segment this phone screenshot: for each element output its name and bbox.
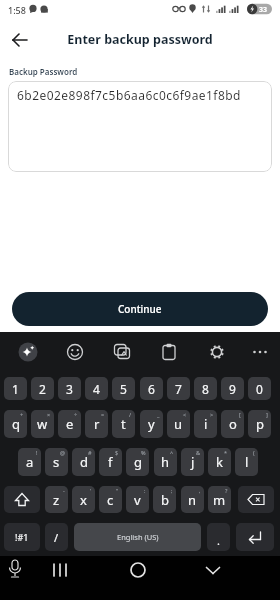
staticText: - bbox=[63, 487, 65, 494]
staticText: Backup Password bbox=[9, 66, 78, 77]
staticText: _ bbox=[157, 411, 160, 418]
button[interactable]: q bbox=[4, 410, 27, 438]
staticText: v bbox=[134, 491, 141, 509]
staticText: 8 bbox=[202, 381, 209, 397]
staticText: 1 bbox=[12, 381, 19, 397]
button[interactable] bbox=[204, 339, 230, 365]
staticText: f bbox=[108, 453, 113, 471]
staticText: $ bbox=[115, 449, 119, 456]
button[interactable]: 1 bbox=[4, 377, 27, 400]
staticText: [ bbox=[239, 411, 241, 418]
staticText: j bbox=[191, 453, 195, 471]
button[interactable]: 9 bbox=[221, 377, 244, 400]
button[interactable]: r bbox=[85, 410, 108, 438]
staticText: 6 bbox=[148, 381, 155, 397]
button[interactable]: English (US) bbox=[74, 523, 201, 551]
button[interactable]: p bbox=[248, 410, 271, 438]
button[interactable]: n bbox=[181, 486, 204, 513]
staticText: o bbox=[229, 415, 237, 433]
button[interactable]: y bbox=[140, 410, 163, 438]
button[interactable]: c bbox=[99, 486, 122, 513]
button[interactable] bbox=[238, 486, 274, 513]
staticText: < bbox=[183, 411, 187, 418]
staticText: a bbox=[26, 453, 34, 471]
staticText: , bbox=[199, 487, 201, 494]
button[interactable]: h bbox=[154, 448, 177, 476]
button[interactable]: k bbox=[208, 448, 231, 476]
button[interactable]: s bbox=[45, 448, 68, 476]
button[interactable]: !#1 bbox=[4, 523, 40, 551]
button[interactable]: j bbox=[181, 448, 204, 476]
button[interactable]: g bbox=[126, 448, 149, 476]
button[interactable]: 6 bbox=[140, 377, 163, 400]
staticText: 1:58 bbox=[8, 4, 26, 16]
button[interactable] bbox=[126, 558, 150, 582]
button[interactable] bbox=[247, 339, 273, 365]
button[interactable]: 0 bbox=[248, 377, 271, 400]
staticText: * bbox=[224, 449, 228, 456]
staticText: n bbox=[188, 491, 197, 509]
button[interactable] bbox=[5, 558, 25, 582]
staticText: k bbox=[216, 453, 223, 471]
staticText: ; bbox=[171, 487, 173, 494]
staticText: u bbox=[174, 415, 183, 433]
staticText: : bbox=[144, 487, 146, 494]
staticText: " bbox=[116, 487, 119, 494]
button[interactable] bbox=[8, 28, 32, 52]
button[interactable]: d bbox=[72, 448, 95, 476]
button[interactable] bbox=[48, 558, 72, 582]
button[interactable]: b bbox=[153, 486, 176, 513]
button[interactable]: v bbox=[126, 486, 149, 513]
button[interactable]: a bbox=[18, 448, 41, 476]
button[interactable]: . bbox=[207, 523, 230, 551]
button[interactable]: Continue bbox=[12, 292, 268, 326]
button[interactable]: f bbox=[99, 448, 122, 476]
button[interactable] bbox=[4, 486, 40, 513]
staticText: . bbox=[217, 533, 220, 548]
button[interactable]: t bbox=[112, 410, 135, 438]
button[interactable]: w bbox=[31, 410, 54, 438]
button[interactable] bbox=[201, 558, 225, 582]
button[interactable]: z bbox=[45, 486, 68, 513]
button[interactable]: 2 bbox=[31, 377, 54, 400]
button[interactable]: 5 bbox=[112, 377, 135, 400]
button[interactable]: 3 bbox=[58, 377, 81, 400]
button[interactable]: 7 bbox=[167, 377, 190, 400]
staticText: English (US) bbox=[117, 532, 159, 542]
staticText: w bbox=[37, 415, 48, 433]
button[interactable]: / bbox=[45, 523, 68, 551]
staticText: b bbox=[161, 491, 169, 509]
staticText: m bbox=[213, 491, 226, 509]
staticText: h bbox=[161, 453, 170, 471]
staticText: ÷ bbox=[74, 411, 78, 418]
staticText: + bbox=[20, 411, 24, 418]
button[interactable] bbox=[236, 523, 274, 551]
staticText: 5 bbox=[120, 381, 127, 397]
staticText: 6b2e02e898f7c5b6aa6c0c6f9ae1f8bd bbox=[17, 87, 241, 103]
staticText: > bbox=[210, 411, 214, 418]
button[interactable] bbox=[156, 339, 182, 365]
staticText: p bbox=[256, 415, 264, 433]
staticText: c bbox=[107, 491, 114, 509]
staticText: Continue bbox=[118, 302, 162, 316]
button[interactable]: 4 bbox=[85, 377, 108, 400]
button[interactable]: i bbox=[194, 410, 217, 438]
button[interactable] bbox=[62, 339, 88, 365]
button[interactable]: o bbox=[221, 410, 244, 438]
staticText: Enter backup password bbox=[0, 31, 280, 48]
staticText: g bbox=[134, 453, 142, 471]
staticText: x bbox=[80, 491, 87, 509]
staticText: ? bbox=[225, 487, 228, 494]
button[interactable]: u bbox=[167, 410, 190, 438]
button[interactable]: m bbox=[208, 486, 231, 513]
staticText: 0 bbox=[256, 381, 263, 397]
staticText: 33 bbox=[259, 5, 268, 15]
button[interactable] bbox=[109, 339, 135, 365]
button[interactable]: 8 bbox=[194, 377, 217, 400]
button[interactable] bbox=[15, 339, 41, 365]
button[interactable]: e bbox=[58, 410, 81, 438]
staticText: & bbox=[196, 449, 201, 456]
button[interactable]: x bbox=[72, 486, 95, 513]
button[interactable]: l bbox=[235, 448, 258, 476]
button[interactable]: 6b2e02e898f7c5b6aa6c0c6f9ae1f8bd bbox=[8, 81, 272, 172]
